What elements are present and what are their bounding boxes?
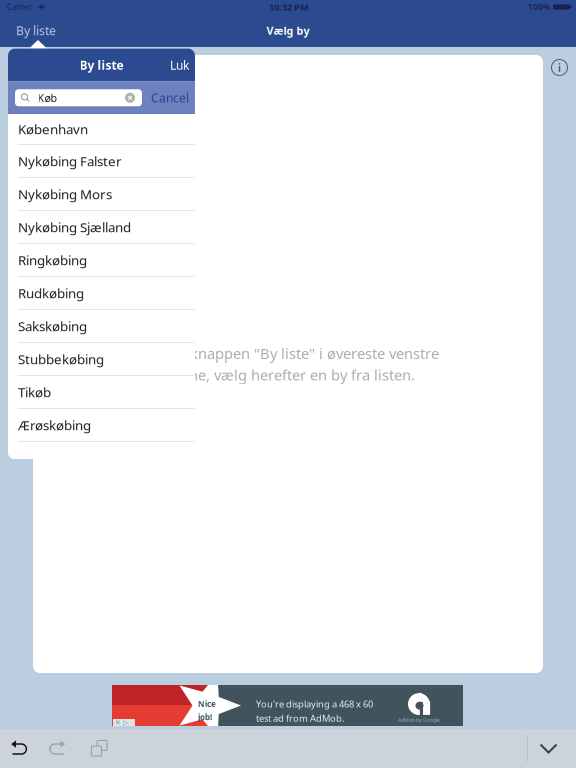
staticText: Køb — [37, 91, 57, 105]
staticText: Nice — [198, 698, 216, 709]
staticText: ✕ — [115, 719, 121, 726]
staticText: Nykøbing Falster — [18, 152, 122, 170]
staticText: hjørne, vælg herefter en by fra listen. — [161, 365, 415, 384]
button[interactable]: By liste — [7, 17, 65, 43]
button[interactable]: Rudkøbing — [8, 277, 195, 310]
button[interactable]: Nice — [112, 685, 463, 726]
staticText: ▷ — [123, 719, 128, 726]
staticText: Rudkøbing — [18, 284, 84, 302]
staticText: You're displaying a 468 x 60 — [256, 698, 373, 710]
staticText: Ærøskøbing — [18, 416, 91, 434]
button[interactable]: Undo — [4, 731, 34, 766]
button[interactable]: Tikøb — [8, 376, 195, 409]
staticText: 100% — [528, 2, 550, 12]
staticText: Nykøbing Sjælland — [18, 218, 131, 236]
staticText: 10:32 PM — [269, 1, 309, 13]
staticText: By liste — [16, 22, 56, 38]
staticText: Nykøbing Mors — [18, 185, 112, 203]
staticText: Tikøb — [18, 383, 51, 401]
staticText: test ad from AdMob. — [256, 712, 345, 724]
button[interactable]: Sakskøbing — [8, 310, 195, 343]
staticText: By liste — [79, 57, 123, 73]
staticText: Vælg by — [266, 23, 309, 38]
button[interactable]: Info — [547, 55, 572, 80]
button[interactable]: Redo — [43, 731, 73, 766]
button[interactable]: Nykøbing Falster — [8, 145, 195, 178]
staticText: Tryk på knappen "By liste" i øvereste ve… — [137, 343, 439, 363]
staticText: København — [18, 120, 88, 138]
button[interactable]: Luk — [167, 53, 192, 77]
button[interactable]: Nykøbing Mors — [8, 178, 195, 211]
button[interactable]: Nykøbing Sjælland — [8, 211, 195, 244]
staticText: AdMob by Google — [398, 716, 440, 724]
staticText: Stubbekøbing — [18, 350, 104, 368]
staticText: Cancel — [151, 90, 189, 106]
staticText: Sakskøbing — [18, 317, 87, 335]
staticText: Luk — [170, 57, 189, 73]
staticText: Ringkøbing — [18, 251, 87, 269]
button[interactable]: Ærøskøbing — [8, 409, 195, 442]
button[interactable]: Cancel — [149, 85, 191, 111]
staticText: Carrier — [7, 2, 32, 12]
button[interactable]: Ringkøbing — [8, 244, 195, 277]
button[interactable]: Paste — [83, 729, 115, 767]
button[interactable]: Stubbekøbing — [8, 343, 195, 376]
button[interactable]: København — [8, 114, 195, 145]
button[interactable]: Hide keyboard — [528, 730, 569, 767]
staticText: job! — [198, 712, 212, 722]
